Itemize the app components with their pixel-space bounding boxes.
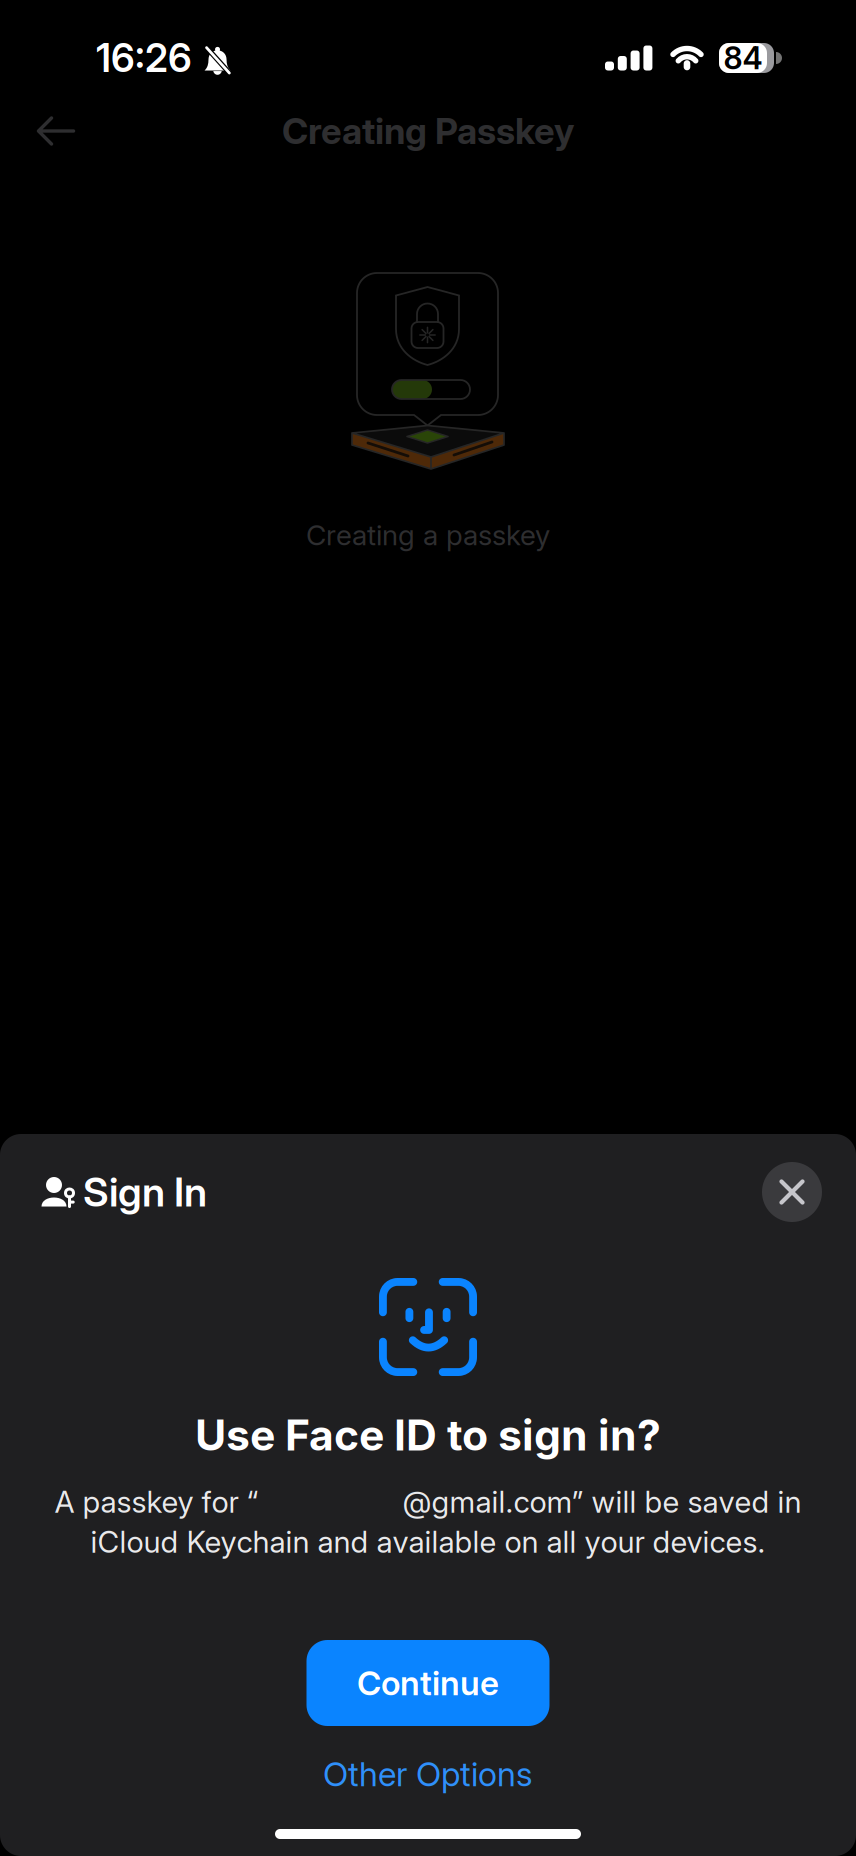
staticText: Continue <box>357 1663 499 1703</box>
staticText: Creating a passkey <box>306 518 550 552</box>
button[interactable]: Back <box>18 98 94 164</box>
staticText: 16:26 <box>96 35 192 81</box>
button[interactable]: Continue <box>306 1640 549 1726</box>
staticText: 84 <box>723 39 762 76</box>
staticText: A passkey for “ <box>54 1484 258 1520</box>
staticText: Creating Passkey <box>282 109 574 153</box>
button[interactable]: Close <box>762 1162 822 1222</box>
staticText: iCloud Keychain and available on all you… <box>90 1524 765 1560</box>
staticText: Other Options <box>323 1754 533 1794</box>
staticText: Sign In <box>83 1168 207 1216</box>
staticText: Use Face ID to sign in? <box>195 1409 661 1461</box>
button[interactable]: Other Options <box>323 1744 533 1804</box>
staticText: @gmail.com” will be saved in <box>402 1484 801 1520</box>
